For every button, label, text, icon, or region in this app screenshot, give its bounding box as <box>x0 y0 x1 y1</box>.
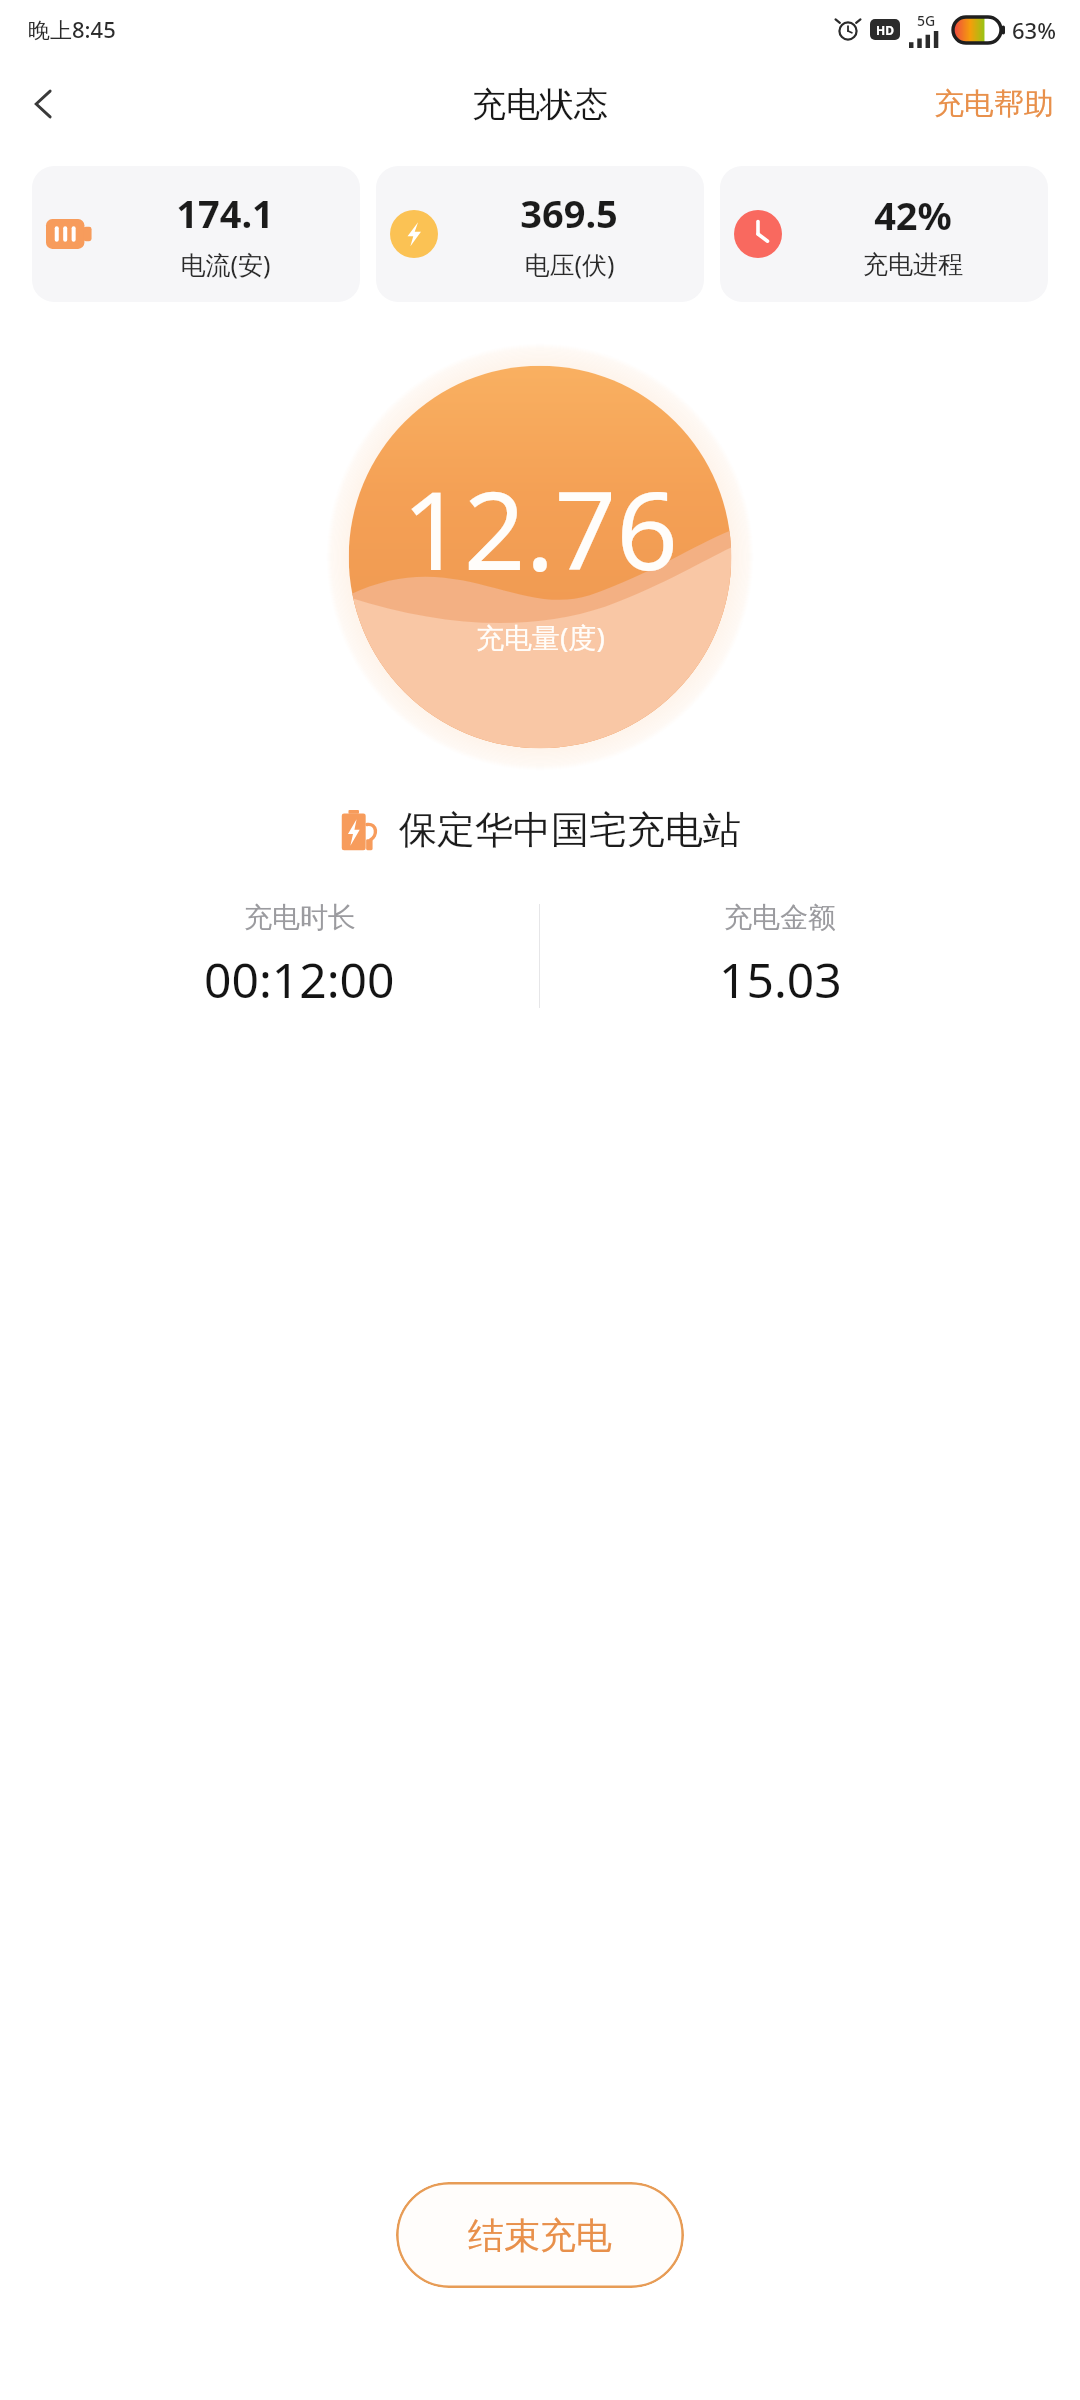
staticText: 63% <box>1012 15 1056 45</box>
staticText: 5G <box>917 11 936 30</box>
staticText: 369.5 <box>520 187 618 239</box>
staticText: 充电帮助 <box>934 85 1054 123</box>
staticText: 结束充电 <box>468 2213 612 2258</box>
staticText: 00:12:00 <box>204 947 395 1012</box>
staticText: 电流(安) <box>180 247 271 281</box>
staticText: HD <box>876 22 894 38</box>
button[interactable]: 充电时长 <box>60 900 539 1012</box>
button[interactable]: 174.1 <box>32 166 360 302</box>
button[interactable]: 369.5 <box>376 166 704 302</box>
staticText: 15.03 <box>719 947 842 1012</box>
button[interactable]: 充电帮助 <box>908 71 1080 137</box>
staticText: 174.1 <box>176 187 274 239</box>
staticText: 充电进程 <box>863 249 963 280</box>
button[interactable]: Back <box>10 70 78 138</box>
button[interactable]: 结束充电 <box>396 2182 684 2288</box>
staticText: 充电状态 <box>472 83 608 126</box>
button[interactable]: 充电金额 <box>540 900 1020 1012</box>
staticText: 晚上8:45 <box>28 14 116 44</box>
staticText: 保定华中国宅充电站 <box>399 806 741 854</box>
button[interactable]: 保定华中国宅充电站 <box>0 806 1080 854</box>
button[interactable]: 42% <box>720 166 1048 302</box>
staticText: 充电时长 <box>244 900 356 935</box>
staticText: 电压(伏) <box>524 247 615 281</box>
staticText: 12.76 <box>402 455 679 602</box>
staticText: 充电量(度) <box>476 618 605 656</box>
staticText: 充电金额 <box>724 900 836 935</box>
staticText: 42% <box>874 189 952 241</box>
